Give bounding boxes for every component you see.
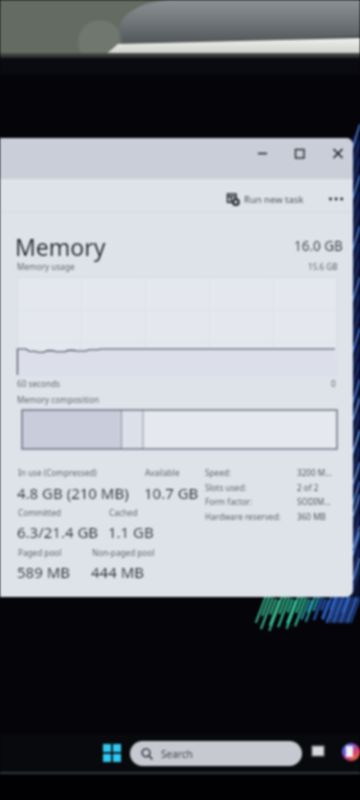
staticText: Run new task — [244, 193, 304, 206]
staticText: 444 MB — [91, 562, 144, 582]
staticText: 15.6 GB — [308, 261, 338, 272]
staticText: Slots used: — [205, 482, 247, 493]
staticText: Hardware reserved: — [205, 511, 281, 522]
button[interactable]: Start — [103, 744, 121, 762]
staticText: In use (Compressed) — [18, 467, 97, 478]
button[interactable]: Task view — [311, 744, 327, 760]
staticText: 2 of 2 — [297, 482, 319, 493]
staticText: 1.1 GB — [108, 522, 154, 542]
staticText: 16.0 GB — [294, 237, 343, 255]
staticText: 3200 M... — [297, 467, 332, 478]
staticText: 589 MB — [17, 562, 70, 582]
staticText: Non-paged pool — [92, 547, 155, 558]
staticText: Cached — [109, 507, 138, 518]
button[interactable]: More options — [327, 191, 345, 207]
button[interactable]: Run new task — [227, 190, 304, 208]
staticText: 360 MB — [297, 511, 326, 522]
button[interactable]: Minimize — [249, 142, 274, 164]
staticText: Available — [145, 467, 180, 478]
staticText: 0 — [331, 378, 336, 389]
staticText: Committed — [18, 507, 62, 518]
staticText: 60 seconds — [17, 378, 60, 389]
staticText: Speed: — [205, 467, 231, 478]
button[interactable]: Search — [130, 741, 302, 766]
button[interactable]: Close — [326, 142, 351, 164]
staticText: Memory composition — [17, 394, 99, 405]
staticText: Paged pool — [18, 547, 62, 558]
staticText: 10.7 GB — [144, 483, 199, 503]
staticText: 6.3/21.4 GB — [17, 522, 99, 542]
staticText: SODIM... — [297, 496, 331, 507]
staticText: Search — [161, 747, 193, 761]
staticText: 4.8 GB (210 MB) — [17, 483, 129, 503]
staticText: Memory — [15, 231, 106, 262]
staticText: Form factor: — [205, 496, 253, 507]
staticText: Memory usage — [17, 261, 75, 272]
button[interactable]: Maximize — [287, 142, 312, 164]
